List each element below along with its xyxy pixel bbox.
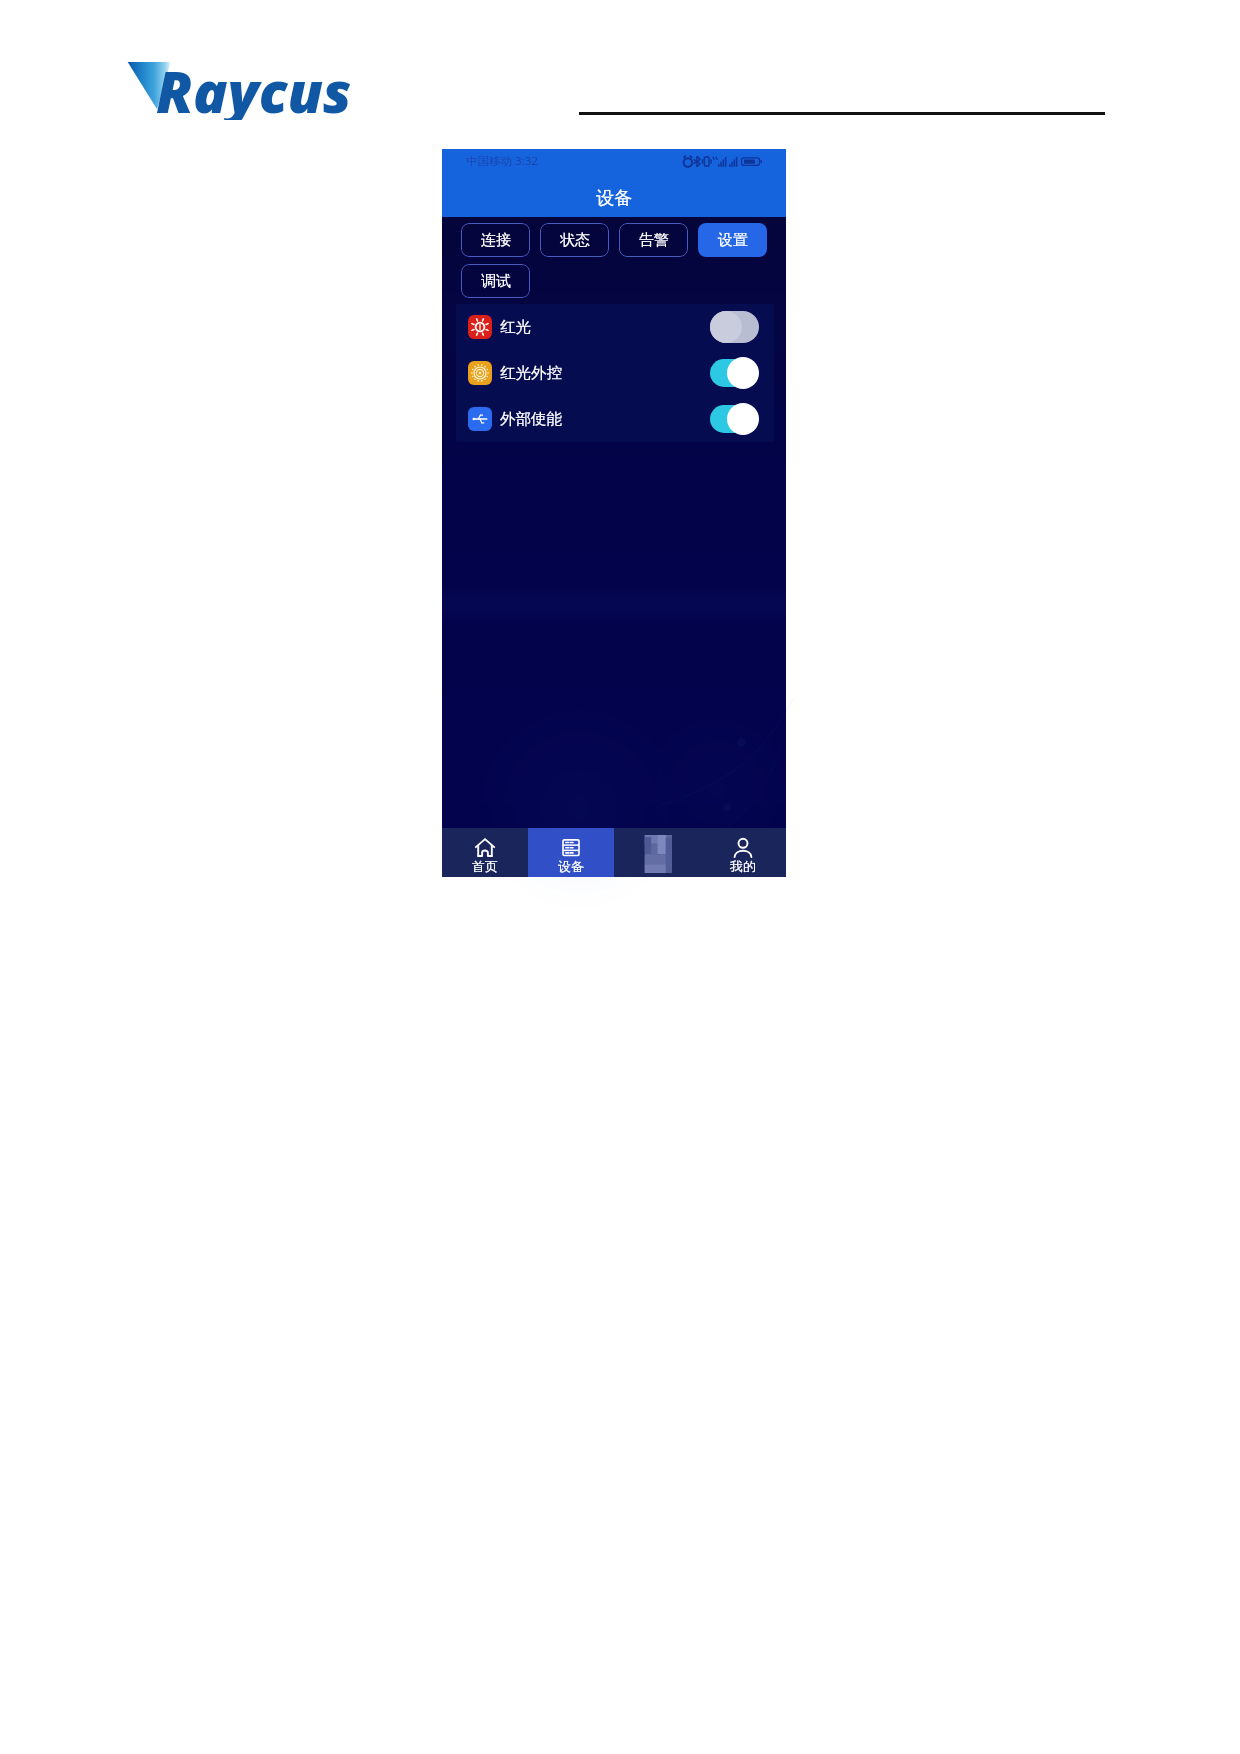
button[interactable]: 红光外控 bbox=[456, 350, 774, 396]
staticText: 设备 bbox=[596, 186, 633, 209]
button[interactable]: 连接 bbox=[461, 223, 530, 257]
button[interactable]: 首页 bbox=[442, 828, 528, 877]
button[interactable]: 设置 bbox=[698, 223, 767, 257]
staticText: 首页 bbox=[472, 858, 498, 874]
button[interactable]: 设备 bbox=[528, 828, 614, 877]
staticText: 状态 bbox=[560, 231, 590, 250]
button[interactable]: 我的 bbox=[700, 828, 786, 877]
staticText: 红光 bbox=[500, 317, 531, 337]
staticText: 外部使能 bbox=[500, 409, 562, 429]
staticText: 告警 bbox=[639, 231, 669, 250]
staticText: 红光外控 bbox=[500, 363, 562, 383]
button[interactable]: 告警 bbox=[619, 223, 688, 257]
button[interactable]: 红光 bbox=[456, 304, 774, 350]
staticText: 我的 bbox=[730, 858, 756, 874]
staticText: 设备 bbox=[558, 858, 584, 874]
staticText: 设置 bbox=[718, 231, 748, 250]
button[interactable]: Switch off bbox=[710, 311, 759, 343]
button[interactable]: 状态 bbox=[540, 223, 609, 257]
staticText: 调试 bbox=[481, 272, 511, 291]
staticText: Raycus bbox=[156, 52, 352, 120]
button[interactable]: Switch on bbox=[710, 403, 759, 435]
button[interactable]: Messages bbox=[614, 828, 700, 877]
button[interactable]: Switch on bbox=[710, 357, 759, 389]
staticText: 连接 bbox=[481, 231, 511, 250]
button[interactable]: 调试 bbox=[461, 264, 530, 298]
staticText: 中国移动 3:32 bbox=[466, 153, 538, 169]
button[interactable]: 外部使能 bbox=[456, 396, 774, 442]
